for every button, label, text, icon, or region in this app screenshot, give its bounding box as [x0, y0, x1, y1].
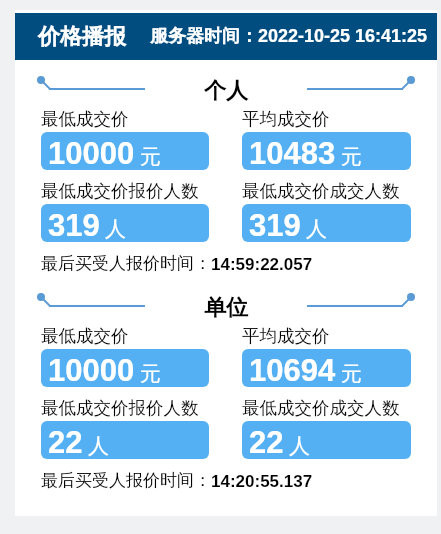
staticText: 个人	[204, 77, 248, 105]
button[interactable]: 319	[242, 204, 411, 242]
staticText: 元	[140, 361, 161, 387]
staticText: 319	[48, 208, 100, 242]
staticText: 平均成交价	[242, 325, 330, 347]
button[interactable]: 22	[41, 421, 209, 459]
staticText: 元	[341, 361, 362, 387]
staticText: 最低成交价	[41, 108, 129, 130]
staticText: 319	[249, 208, 301, 242]
button[interactable]: 10694	[242, 349, 411, 387]
staticText: 14:20:55.137	[211, 472, 313, 491]
button[interactable]: 价格播报	[15, 13, 437, 60]
staticText: 最低成交价报价人数	[41, 397, 199, 419]
button[interactable]: 319	[41, 204, 209, 242]
staticText: 最低成交价报价人数	[41, 180, 199, 202]
button[interactable]: 10000	[41, 132, 209, 170]
staticText: 人	[88, 433, 109, 459]
staticText: 22	[249, 425, 284, 459]
staticText: 10483	[249, 136, 336, 170]
staticText: 价格播报	[38, 23, 126, 51]
staticText: 22	[48, 425, 83, 459]
staticText: 人	[289, 433, 310, 459]
staticText: 单位	[204, 294, 248, 322]
button[interactable]: 10483	[242, 132, 411, 170]
staticText: 人	[105, 216, 126, 242]
staticText: 14:59:22.057	[211, 255, 313, 274]
staticText: 元	[341, 144, 362, 170]
staticText: 最低成交价	[41, 325, 129, 347]
button[interactable]: 10000	[41, 349, 209, 387]
staticText: 最低成交价成交人数	[242, 397, 400, 419]
staticText: 最低成交价成交人数	[242, 180, 400, 202]
staticText: 10000	[48, 353, 135, 387]
staticText: 人	[306, 216, 327, 242]
staticText: 平均成交价	[242, 108, 330, 130]
staticText: 最后买受人报价时间：	[41, 253, 211, 274]
staticText: 10694	[249, 353, 336, 387]
staticText: 10000	[48, 136, 135, 170]
staticText: 服务器时间：2022-10-25 16:41:25	[150, 25, 428, 48]
button[interactable]: 22	[242, 421, 411, 459]
staticText: 最后买受人报价时间：	[41, 470, 211, 491]
staticText: 元	[140, 144, 161, 170]
